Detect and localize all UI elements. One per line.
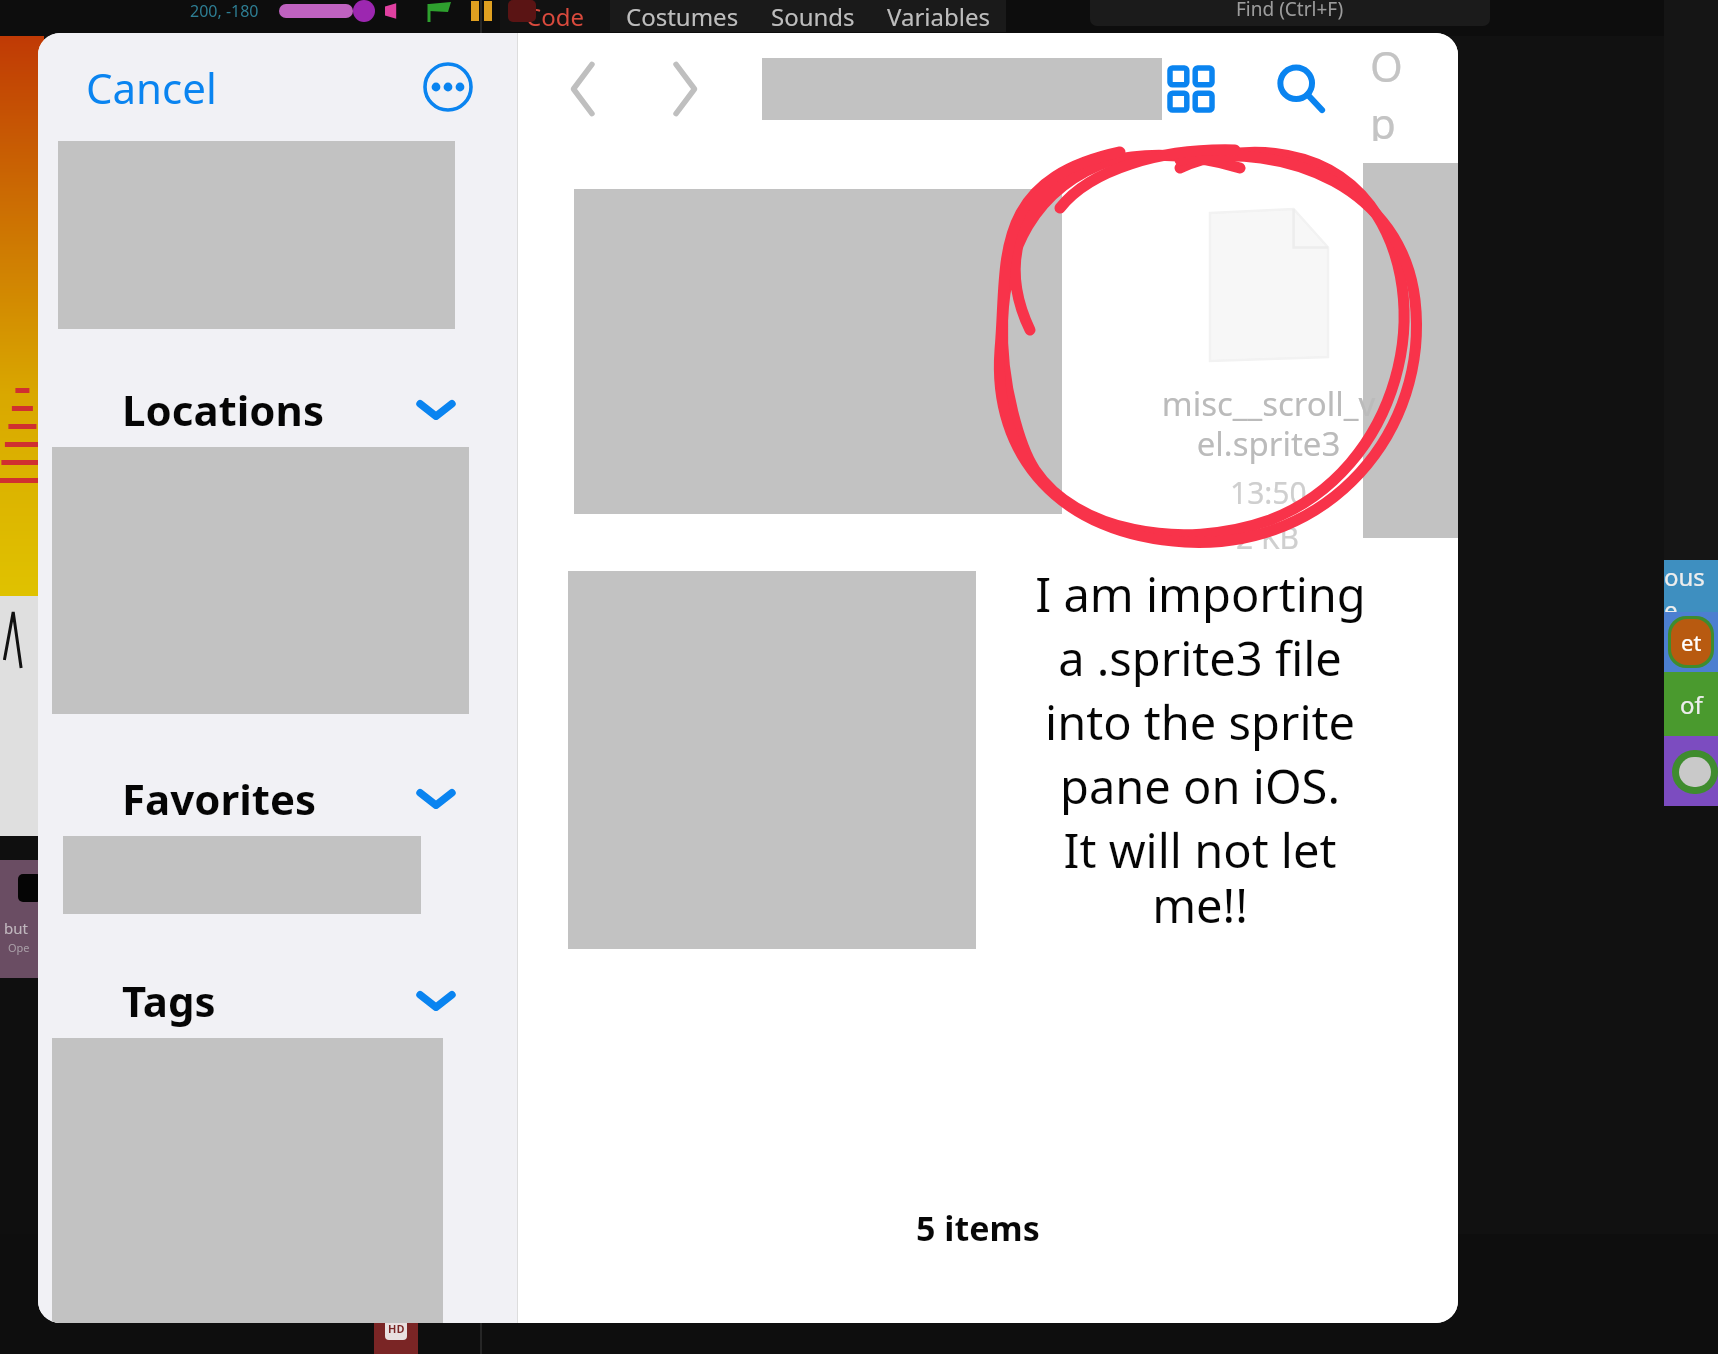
button[interactable]: Back bbox=[554, 54, 612, 124]
staticText: Locations bbox=[122, 381, 324, 438]
button[interactable]: Costumes bbox=[610, 0, 755, 32]
staticText: It will not let me!! bbox=[1020, 818, 1380, 937]
staticText: a .sprite3 file bbox=[1058, 626, 1342, 690]
staticText: 2 KB bbox=[1236, 517, 1300, 558]
staticText: ouse bbox=[1664, 560, 1718, 612]
staticText: I am importing bbox=[1035, 562, 1366, 626]
button[interactable]: Forward bbox=[656, 54, 714, 124]
staticText: Favorites bbox=[122, 770, 317, 827]
staticText: but bbox=[4, 918, 28, 938]
staticText: into the sprite bbox=[1045, 690, 1355, 754]
staticText: Ope bbox=[8, 940, 30, 955]
staticText: HD bbox=[388, 1321, 405, 1336]
staticText: Find (Ctrl+F) bbox=[1236, 0, 1344, 22]
button[interactable]: Favorites bbox=[38, 760, 517, 836]
staticText: Open bbox=[1370, 37, 1414, 141]
staticText: Costumes bbox=[626, 0, 739, 32]
staticText: 200, -180 bbox=[190, 0, 259, 22]
staticText: Cancel bbox=[86, 59, 217, 116]
button[interactable]: Locations bbox=[38, 371, 517, 447]
button[interactable]: Grid view bbox=[1162, 60, 1220, 118]
button[interactable]: Cancel bbox=[82, 55, 221, 120]
staticText: et bbox=[1681, 627, 1702, 657]
staticText: Tags bbox=[122, 972, 216, 1029]
staticText: 5 items bbox=[916, 1205, 1040, 1251]
button[interactable]: More options bbox=[423, 62, 473, 112]
staticText: Sounds bbox=[771, 0, 855, 32]
button[interactable]: Search bbox=[1270, 58, 1332, 120]
staticText: pane on iOS. bbox=[1060, 754, 1340, 818]
button[interactable]: misc__scroll_vel.sprite3 bbox=[1128, 203, 1408, 558]
staticText: Code bbox=[526, 0, 584, 32]
button[interactable]: Sounds bbox=[755, 0, 871, 32]
button[interactable]: Tags bbox=[38, 962, 517, 1038]
button[interactable]: Code bbox=[500, 0, 610, 32]
staticText: misc__scroll_vel.sprite3 bbox=[1156, 381, 1381, 466]
staticText: Variables bbox=[887, 0, 990, 32]
staticText: 13:50 bbox=[1230, 472, 1307, 513]
staticText: of bbox=[1680, 688, 1703, 721]
button[interactable]: Variables bbox=[871, 0, 1006, 32]
button[interactable]: Open bbox=[1366, 33, 1418, 145]
